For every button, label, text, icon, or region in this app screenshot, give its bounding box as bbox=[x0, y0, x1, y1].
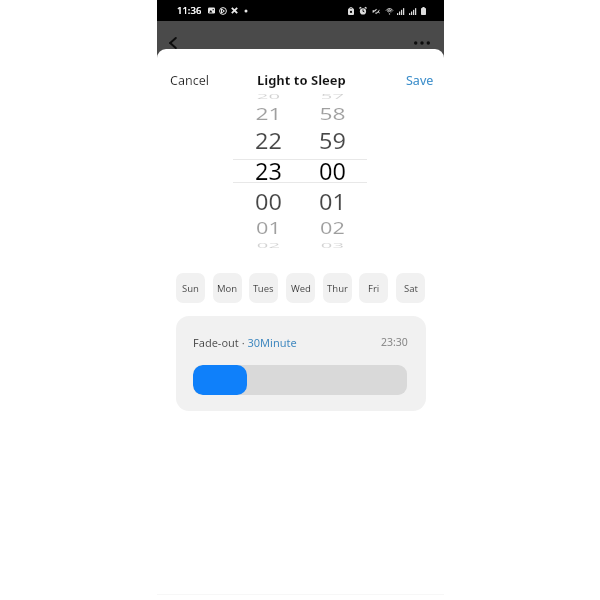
staticText: 20 bbox=[257, 93, 280, 101]
staticText: 58 bbox=[319, 103, 346, 124]
staticText: 00 bbox=[319, 155, 346, 187]
button[interactable]: Cancel bbox=[163, 66, 216, 95]
button[interactable]: Mon bbox=[213, 273, 242, 303]
staticText: 03 bbox=[321, 240, 344, 250]
button[interactable]: Wed bbox=[286, 273, 315, 303]
button[interactable]: Save bbox=[399, 66, 441, 95]
staticText: Sat bbox=[404, 282, 418, 295]
staticText: 11:36 bbox=[177, 4, 202, 17]
staticText: Fri bbox=[368, 282, 380, 295]
staticText: 23:30 bbox=[381, 335, 408, 349]
button[interactable]: Sun bbox=[176, 273, 205, 303]
staticText: 02 bbox=[320, 217, 345, 239]
staticText: Save bbox=[406, 72, 434, 89]
staticText: Wed bbox=[291, 282, 311, 295]
button[interactable]: Thur bbox=[323, 273, 352, 303]
staticText: 01 bbox=[256, 217, 281, 239]
staticText: Thur bbox=[327, 282, 348, 295]
staticText: 00 bbox=[255, 187, 282, 217]
staticText: 22 bbox=[255, 125, 282, 155]
button[interactable]: More options bbox=[409, 30, 435, 56]
staticText: Mon bbox=[217, 282, 238, 295]
staticText: Fade-out · 30Minute bbox=[193, 335, 297, 350]
staticText: Cancel bbox=[170, 72, 209, 89]
button[interactable]: Sat bbox=[396, 273, 425, 303]
staticText: 23 bbox=[255, 155, 282, 187]
staticText: 59 bbox=[319, 125, 346, 155]
staticText: 21 bbox=[255, 103, 282, 124]
button[interactable]: Fri bbox=[359, 273, 388, 303]
staticText: 01 bbox=[319, 187, 346, 217]
button[interactable]: Back bbox=[160, 30, 186, 56]
staticText: Light to Sleep bbox=[257, 71, 346, 89]
staticText: 02 bbox=[257, 240, 280, 250]
button[interactable] bbox=[193, 365, 407, 395]
button[interactable]: Tues bbox=[249, 273, 278, 303]
staticText: 57 bbox=[321, 93, 344, 101]
staticText: Tues bbox=[253, 282, 274, 295]
staticText: Sun bbox=[182, 282, 199, 295]
